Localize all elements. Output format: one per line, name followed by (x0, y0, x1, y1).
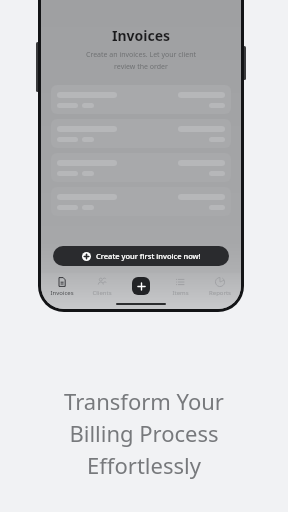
button[interactable]: Invoices (44, 277, 80, 297)
staticText: Reports (209, 289, 231, 297)
staticText: Clients (92, 289, 112, 297)
button[interactable]: Items (162, 277, 198, 297)
staticText: Billing Process (69, 418, 219, 448)
button[interactable]: Create your first invoice now! (53, 246, 229, 266)
staticText: Create your first invoice now! (96, 251, 201, 261)
staticText: Invoices (41, 26, 241, 45)
staticText: Transform Your (64, 386, 224, 416)
button[interactable]: Create new (132, 277, 150, 295)
staticText: Items (172, 289, 189, 297)
staticText: Invoices (50, 289, 74, 297)
button[interactable]: Reports (202, 277, 238, 297)
staticText: Effortlessly (87, 450, 201, 480)
button[interactable]: Clients (84, 277, 120, 297)
staticText: Create an invoices. Let your client revi… (55, 50, 227, 71)
